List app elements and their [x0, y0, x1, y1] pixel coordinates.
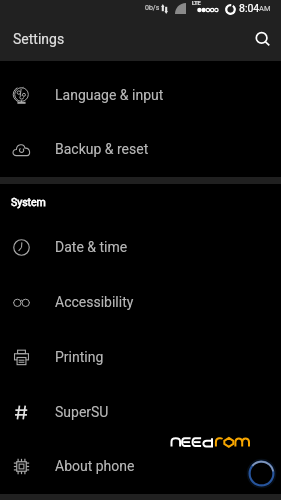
staticText: Accessibility	[55, 294, 134, 310]
button[interactable]: Backup & reset	[0, 122, 281, 176]
button: System	[11, 194, 46, 210]
button[interactable]: Language & input	[0, 68, 281, 122]
staticText: Settings	[13, 31, 65, 47]
staticText: SuperSU	[55, 404, 109, 420]
button[interactable]: SuperSU	[0, 385, 281, 439]
button[interactable]: Accessibility	[0, 275, 281, 329]
staticText: Backup & reset	[55, 141, 149, 157]
staticText: AM	[259, 4, 271, 13]
staticText: Printing	[55, 349, 104, 365]
button[interactable]: Date & time	[0, 220, 281, 274]
staticText: 0b/s	[145, 4, 160, 12]
button[interactable]: About phone	[0, 439, 281, 493]
staticText: 8:04	[239, 2, 260, 14]
staticText: Date & time	[55, 239, 128, 255]
button[interactable]: Printing	[0, 330, 281, 384]
staticText: LTE	[192, 0, 201, 6]
button[interactable]: Search	[246, 23, 281, 59]
staticText: Language & input	[55, 87, 164, 103]
staticText: About phone	[55, 458, 135, 474]
staticText: System	[11, 196, 46, 208]
